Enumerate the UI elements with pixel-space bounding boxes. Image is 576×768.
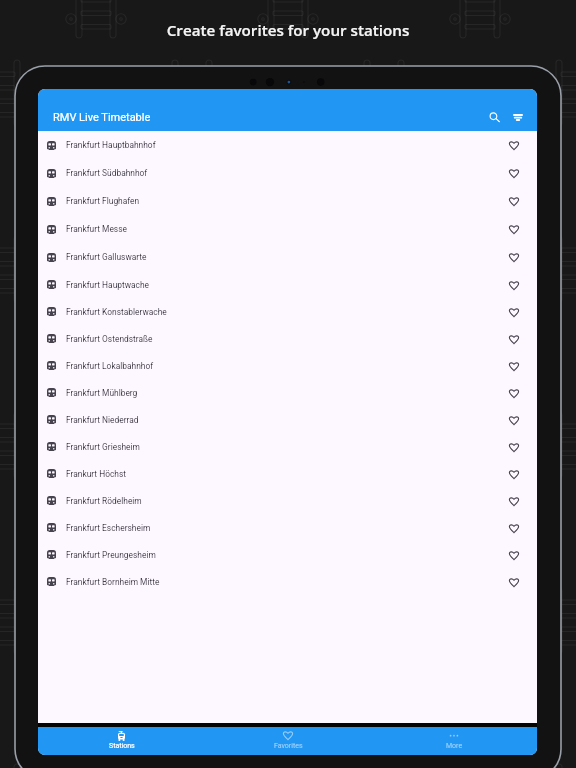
button[interactable]: Search bbox=[483, 105, 507, 129]
button[interactable]: Frankfurt Ostendstraße bbox=[38, 325, 537, 352]
button[interactable]: Add to favorites bbox=[504, 545, 524, 565]
button[interactable]: Favorites bbox=[205, 727, 371, 755]
staticText: RMV Live Timetable bbox=[53, 111, 151, 124]
staticText: Frankfurt Mühlberg bbox=[66, 388, 138, 398]
staticText: Frankfurt Lokalbahnhof bbox=[66, 361, 154, 371]
staticText: More bbox=[446, 742, 463, 750]
button[interactable]: Frankfurt Hauptbahnhof bbox=[38, 131, 537, 159]
button[interactable]: Add to favorites bbox=[504, 464, 524, 484]
staticText: Frankfurt Preungesheim bbox=[66, 550, 156, 560]
button[interactable]: More bbox=[371, 727, 537, 755]
button[interactable]: Frankfurt Flughafen bbox=[38, 187, 537, 215]
button[interactable]: Frankfurt Rödelheim bbox=[38, 487, 537, 514]
staticText: Stations bbox=[109, 742, 135, 750]
staticText: Frankfurt Messe bbox=[66, 224, 127, 234]
button[interactable]: Frankurt Höchst bbox=[38, 460, 537, 487]
button[interactable]: Frankfurt Griesheim bbox=[38, 433, 537, 460]
button[interactable]: Add to favorites bbox=[504, 491, 524, 511]
staticText: Frankfurt Hauptbahnhof bbox=[66, 140, 156, 150]
button[interactable]: Frankfurt Messe bbox=[38, 215, 537, 243]
button[interactable]: Filter bbox=[506, 105, 530, 129]
staticText: Create favorites for your stations bbox=[0, 20, 576, 41]
staticText: Frankfurt Hauptwache bbox=[66, 280, 150, 290]
button[interactable]: Add to favorites bbox=[504, 329, 524, 349]
button[interactable]: Add to favorites bbox=[504, 247, 524, 267]
button[interactable]: Add to favorites bbox=[504, 163, 524, 183]
staticText: Frankfurt Galluswarte bbox=[66, 252, 147, 262]
button[interactable]: Frankfurt Bornheim Mitte bbox=[38, 568, 537, 595]
button[interactable]: Frankfurt Lokalbahnhof bbox=[38, 352, 537, 379]
button[interactable]: Frankfurt Hauptwache bbox=[38, 271, 537, 298]
staticText: Frankfurt Rödelheim bbox=[66, 496, 142, 506]
button[interactable]: Frankfurt Mühlberg bbox=[38, 379, 537, 406]
staticText: Frankfurt Niederrad bbox=[66, 415, 139, 425]
button[interactable]: Add to favorites bbox=[504, 572, 524, 592]
button[interactable]: Add to favorites bbox=[504, 275, 524, 295]
button[interactable]: Frankfurt Konstablerwache bbox=[38, 298, 537, 325]
staticText: Frankfurt Konstablerwache bbox=[66, 307, 167, 317]
button[interactable]: Frankfurt Niederrad bbox=[38, 406, 537, 433]
button[interactable]: Add to favorites bbox=[504, 356, 524, 376]
button[interactable]: Frankfurt Eschersheim bbox=[38, 514, 537, 541]
button[interactable]: Add to favorites bbox=[504, 437, 524, 457]
button[interactable]: Stations bbox=[38, 727, 205, 755]
staticText: Frankfurt Eschersheim bbox=[66, 523, 151, 533]
button[interactable]: Add to favorites bbox=[504, 302, 524, 322]
button[interactable]: Add to favorites bbox=[504, 518, 524, 538]
staticText: Frankfurt Südbahnhof bbox=[66, 168, 148, 178]
button[interactable]: Add to favorites bbox=[504, 383, 524, 403]
button[interactable]: Frankfurt Preungesheim bbox=[38, 541, 537, 568]
button[interactable]: Add to favorites bbox=[504, 135, 524, 155]
staticText: Frankfurt Ostendstraße bbox=[66, 334, 153, 344]
button[interactable]: Add to favorites bbox=[504, 191, 524, 211]
button[interactable]: Frankfurt Galluswarte bbox=[38, 243, 537, 271]
staticText: Frankfurt Griesheim bbox=[66, 442, 140, 452]
button[interactable]: Add to favorites bbox=[504, 219, 524, 239]
button[interactable]: Add to favorites bbox=[504, 410, 524, 430]
staticText: Frankfurt Flughafen bbox=[66, 196, 140, 206]
staticText: Frankurt Höchst bbox=[66, 469, 127, 479]
button[interactable]: Frankfurt Südbahnhof bbox=[38, 159, 537, 187]
staticText: Frankfurt Bornheim Mitte bbox=[66, 577, 160, 587]
staticText: Favorites bbox=[274, 742, 303, 750]
